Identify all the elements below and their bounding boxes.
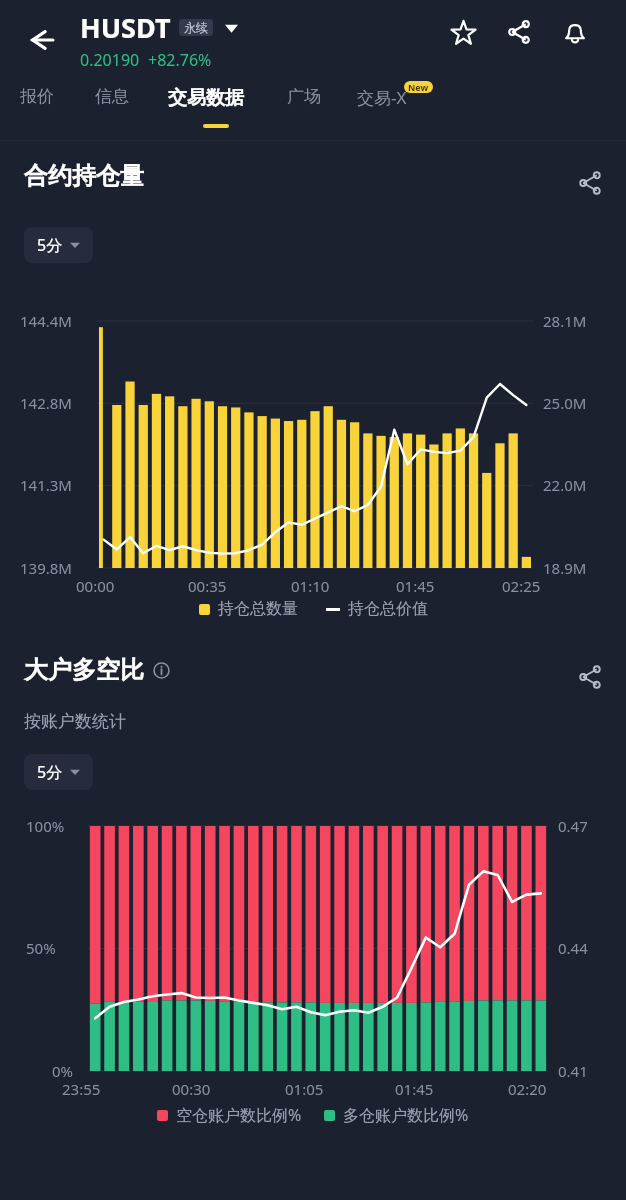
button[interactable]: 广场 — [287, 86, 321, 107]
staticText: 0% — [52, 1061, 74, 1081]
staticText: 空仓账户数比例% — [176, 1104, 302, 1126]
button[interactable]: 交易数据 — [168, 86, 244, 110]
button[interactable]: 5分 — [24, 754, 93, 790]
button[interactable]: Info — [150, 659, 172, 681]
staticText: 永续 — [184, 20, 208, 35]
button[interactable]: Favorite — [440, 9, 486, 55]
staticText: 5分 — [37, 761, 63, 783]
staticText: 信息 — [95, 86, 129, 107]
button[interactable]: Back — [14, 12, 70, 68]
staticText: 广场 — [287, 86, 321, 107]
button[interactable]: 信息 — [95, 86, 129, 107]
button[interactable]: 交易-X — [357, 86, 407, 109]
staticText: 01:05 — [285, 1079, 324, 1099]
staticText: 28.1M — [543, 311, 587, 331]
staticText: 23:55 — [62, 1079, 101, 1099]
staticText: New — [408, 81, 429, 93]
staticText: 02:25 — [502, 576, 541, 596]
button[interactable]: Share — [496, 9, 542, 55]
button[interactable]: Select contract — [221, 18, 241, 38]
staticText: 00:30 — [172, 1079, 211, 1099]
staticText: 22.0M — [543, 475, 587, 495]
staticText: 141.3M — [20, 475, 72, 495]
staticText: 0.44 — [558, 938, 588, 958]
staticText: 01:45 — [395, 1079, 434, 1099]
staticText: 合约持仓量 — [24, 161, 144, 191]
staticText: 00:35 — [188, 576, 227, 596]
button[interactable]: Share chart — [568, 161, 612, 205]
staticText: 01:45 — [396, 576, 435, 596]
staticText: 报价 — [20, 86, 54, 107]
staticText: 25.0M — [543, 393, 587, 413]
staticText: 50% — [26, 938, 56, 958]
staticText: 大户多空比 — [24, 655, 144, 685]
staticText: 0.41 — [558, 1061, 588, 1081]
staticText: 按账户数统计 — [24, 711, 126, 732]
staticText: 5分 — [37, 234, 63, 256]
staticText: 多仓账户数比例% — [343, 1104, 469, 1126]
staticText: 144.4M — [20, 311, 72, 331]
staticText: 142.8M — [20, 393, 72, 413]
staticText: 持仓总价值 — [348, 599, 428, 619]
button[interactable]: 5分 — [24, 227, 93, 263]
staticText: 01:10 — [291, 576, 330, 596]
staticText: 持仓总数量 — [218, 599, 298, 619]
staticText: 139.8M — [20, 558, 72, 578]
button[interactable]: Notifications — [552, 9, 598, 55]
staticText: 交易-X — [357, 86, 407, 109]
staticText: 02:20 — [508, 1079, 547, 1099]
staticText: 交易数据 — [168, 86, 244, 110]
staticText: +82.76% — [148, 49, 212, 71]
staticText: 0.20190 — [80, 49, 140, 71]
staticText: 18.9M — [543, 558, 587, 578]
staticText: 100% — [26, 816, 65, 836]
staticText: HUSDT — [80, 9, 171, 46]
staticText: 0.47 — [558, 816, 588, 836]
button[interactable]: 报价 — [20, 86, 54, 107]
button[interactable]: Share chart — [568, 655, 612, 699]
staticText: 00:00 — [76, 576, 115, 596]
